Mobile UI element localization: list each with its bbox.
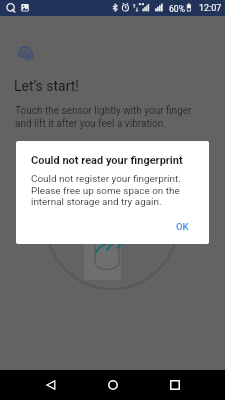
staticText: Could not register your fingerprint. Ple… bbox=[31, 173, 181, 207]
staticText: OK bbox=[176, 221, 189, 232]
button[interactable]: Back bbox=[36, 370, 66, 400]
staticText: 60% bbox=[169, 4, 185, 14]
staticText: 12:07 bbox=[199, 3, 222, 14]
staticText: Let’s start! bbox=[14, 78, 79, 94]
staticText: Touch the sensor lightly with your finge… bbox=[15, 105, 192, 129]
button[interactable]: Recent apps bbox=[160, 370, 190, 400]
button[interactable]: OK bbox=[167, 215, 198, 238]
button[interactable]: Home bbox=[98, 370, 128, 400]
staticText: Could not read your fingerprint bbox=[31, 154, 183, 167]
